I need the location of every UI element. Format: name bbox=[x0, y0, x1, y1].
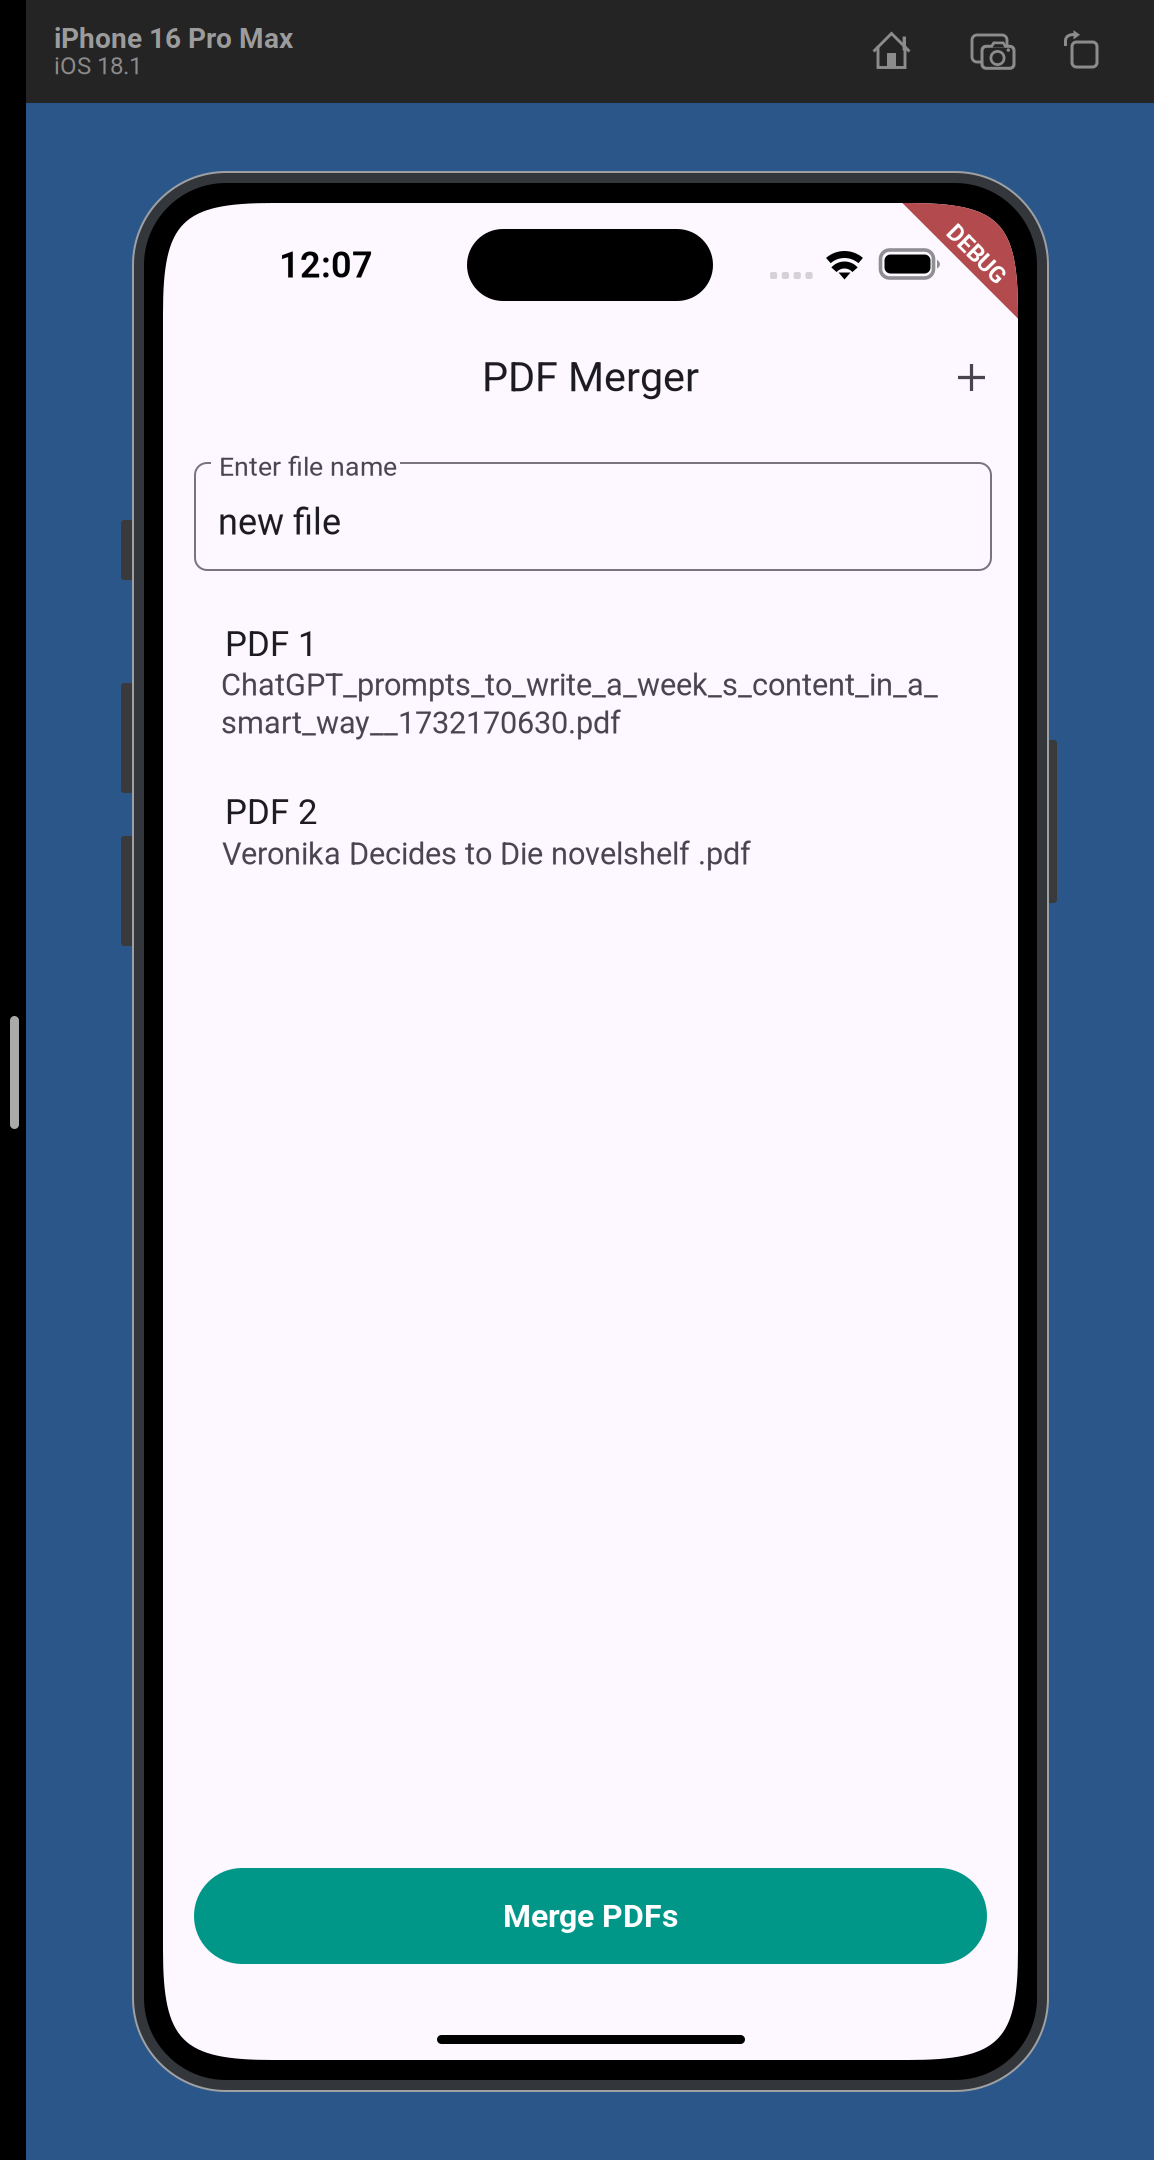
staticText: DEBUG bbox=[950, 251, 1022, 277]
button[interactable]: Add PDF bbox=[944, 350, 999, 405]
button[interactable]: Rotate bbox=[1064, 29, 1097, 67]
staticText: smart_way__1732170630.pdf bbox=[221, 705, 621, 741]
staticText: PDF Merger bbox=[482, 353, 699, 401]
button[interactable]: Home bbox=[872, 32, 911, 69]
staticText: Veronika Decides to Die novelshelf .pdf bbox=[222, 836, 751, 872]
staticText: 12:07 bbox=[279, 244, 373, 286]
staticText: iOS 18.1 bbox=[54, 52, 142, 80]
staticText: ChatGPT_prompts_to_write_a_week_s_conten… bbox=[221, 667, 938, 703]
staticText: new file bbox=[218, 501, 341, 543]
button[interactable]: Screenshot bbox=[972, 35, 1017, 73]
staticText: PDF 1 bbox=[225, 624, 317, 665]
staticText: iPhone 16 Pro Max bbox=[54, 22, 293, 55]
staticText: Enter file name bbox=[219, 451, 397, 482]
staticText: Merge PDFs bbox=[503, 1897, 678, 1935]
staticText: PDF 2 bbox=[225, 792, 317, 833]
button[interactable]: Merge PDFs bbox=[194, 1868, 987, 1964]
